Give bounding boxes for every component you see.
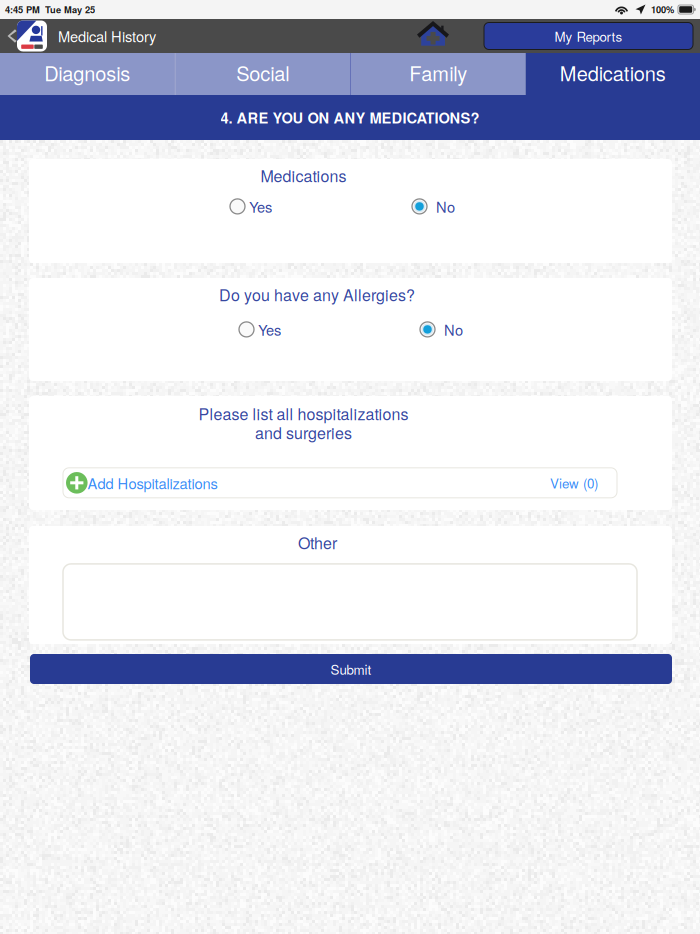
staticText: View (0): [550, 473, 598, 492]
button[interactable]: Back: [0, 19, 17, 52]
staticText: Do you have any Allergies?: [219, 283, 415, 306]
staticText: Add Hospitalizations: [88, 472, 218, 493]
staticText: 4:45 PM: [5, 3, 40, 16]
staticText: 100%: [651, 3, 674, 16]
button[interactable]: Yes: [239, 319, 281, 340]
staticText: Diagnosis: [44, 58, 130, 87]
button[interactable]: Social: [175, 53, 350, 95]
staticText: No: [444, 319, 463, 340]
button[interactable]: Yes: [230, 196, 272, 217]
button[interactable]: Add Hospitalizations: [29, 468, 672, 498]
button[interactable]: My Reports: [484, 22, 693, 49]
button[interactable]: Submit: [0, 654, 700, 684]
staticText: No: [436, 196, 455, 217]
staticText: Other: [298, 531, 337, 554]
staticText: Please list all hospitalizations: [198, 402, 408, 425]
staticText: Tue May 25: [45, 3, 95, 16]
button[interactable]: No: [412, 196, 455, 217]
staticText: Yes: [249, 196, 272, 217]
staticText: Medications: [260, 164, 346, 187]
staticText: Medical History: [58, 25, 156, 46]
staticText: and surgeries: [255, 421, 352, 444]
button[interactable]: Diagnosis: [0, 53, 174, 95]
button[interactable]: Home: [417, 20, 449, 51]
staticText: Family: [409, 58, 467, 87]
staticText: Yes: [258, 319, 281, 340]
staticText: Submit: [330, 659, 371, 679]
button[interactable]: Medications: [525, 53, 700, 95]
button[interactable]: No: [420, 319, 463, 340]
staticText: Social: [236, 58, 289, 87]
staticText: My Reports: [554, 26, 622, 46]
staticText: Medications: [560, 58, 666, 87]
staticText: 4. ARE YOU ON ANY MEDICATIONS?: [220, 107, 479, 128]
button[interactable]: Family: [351, 53, 525, 95]
